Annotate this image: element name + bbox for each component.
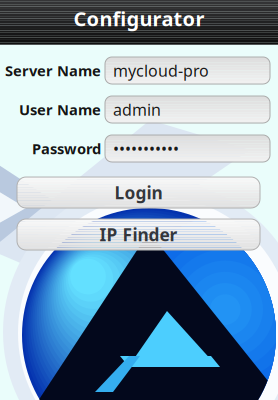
button[interactable]: IP Finder — [17, 219, 260, 250]
staticText: Server Name — [5, 61, 101, 80]
staticText: IP Finder — [99, 223, 177, 246]
staticText: ••••••••••• — [113, 138, 179, 159]
staticText: admin — [113, 99, 161, 120]
staticText: Password — [32, 139, 101, 158]
staticText: Login — [114, 181, 162, 204]
staticText: Configurator — [73, 5, 204, 32]
staticText: mycloud-pro — [113, 60, 209, 81]
staticText: User Name — [19, 100, 101, 119]
button[interactable]: Login — [17, 177, 260, 208]
